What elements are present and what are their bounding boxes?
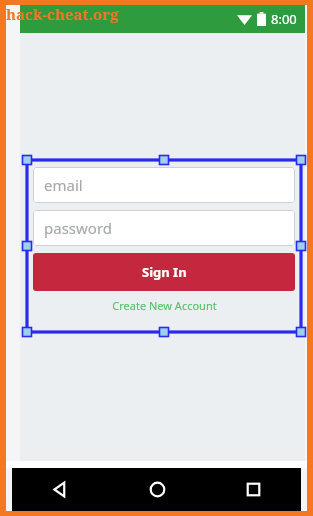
button[interactable]: Sign In [33,253,295,291]
button[interactable]: email [33,167,295,203]
button[interactable]: Recent apps [205,468,301,511]
staticText: 8:00 [271,10,297,28]
staticText: Create New Account [112,298,217,313]
staticText: password [44,218,112,238]
button[interactable]: Create New Account [33,295,295,315]
button[interactable]: Home [109,468,205,511]
staticText: hack-cheat.org [6,4,119,24]
button[interactable]: Back [12,468,109,511]
staticText: Sign In [142,263,187,281]
button[interactable]: password [33,210,295,246]
staticText: email [44,175,83,195]
